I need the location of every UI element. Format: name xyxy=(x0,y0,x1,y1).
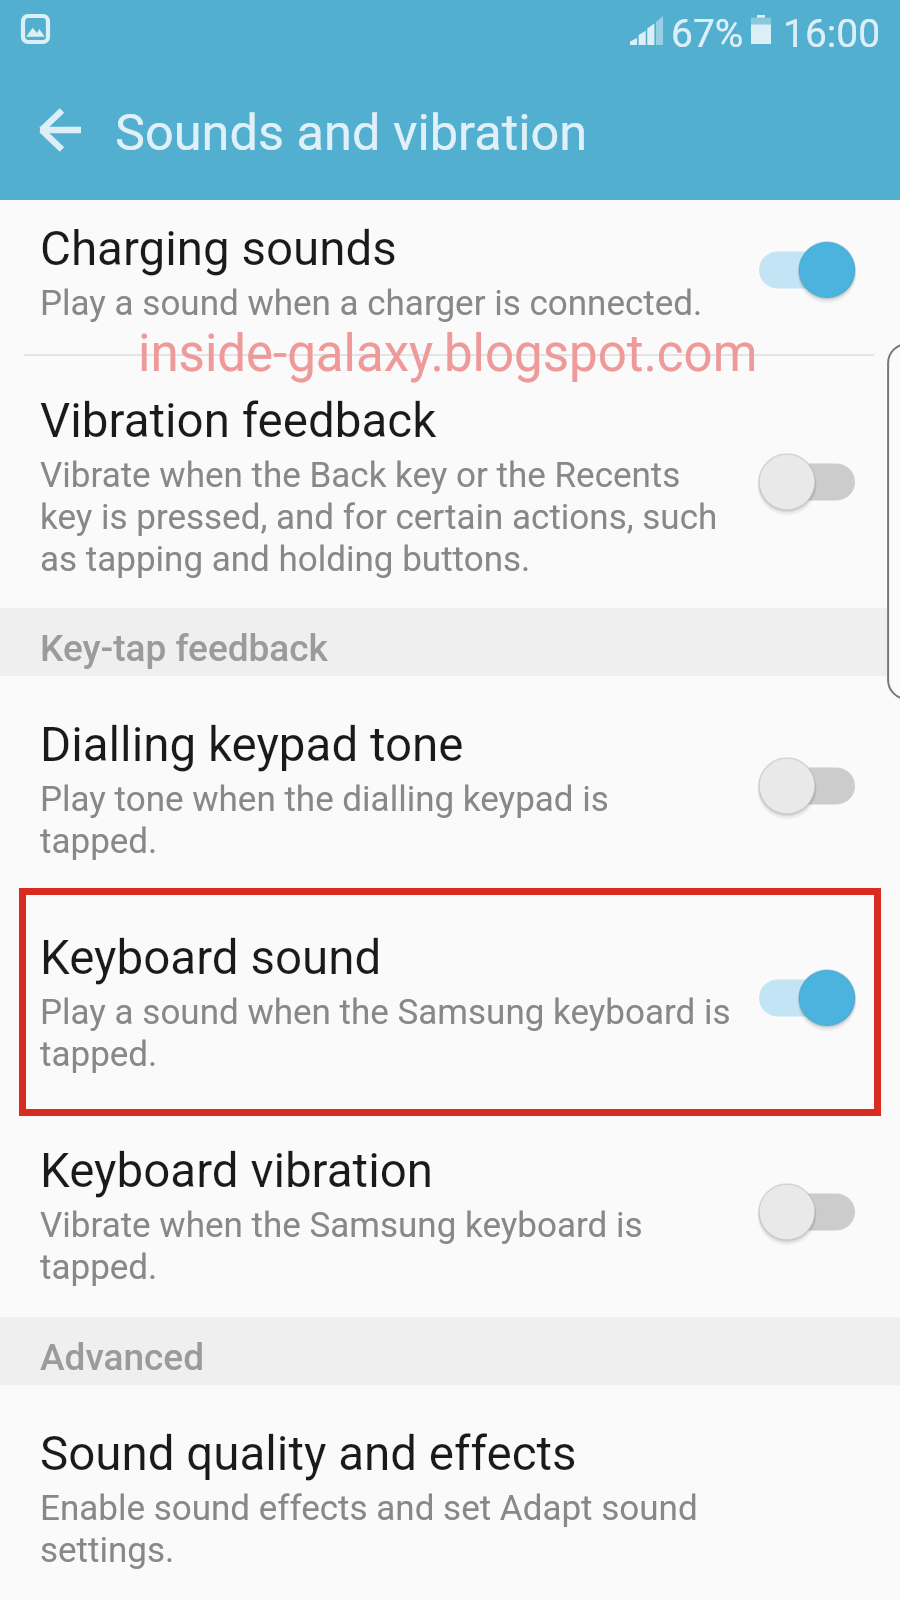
button[interactable] xyxy=(0,676,900,889)
staticText: Sound quality and effects xyxy=(40,1426,577,1482)
button[interactable] xyxy=(0,889,900,1115)
button[interactable] xyxy=(0,1115,900,1317)
staticText: Sounds and vibration xyxy=(115,103,588,162)
button[interactable]: Switch on xyxy=(755,238,859,302)
staticText: Key-tap feedback xyxy=(40,627,328,670)
staticText: 67% xyxy=(671,11,744,57)
button[interactable]: Switch off xyxy=(755,754,859,818)
staticText: Keyboard sound xyxy=(40,930,382,986)
staticText: Keyboard vibration xyxy=(40,1143,434,1199)
button[interactable]: Screenshot captured xyxy=(21,14,50,44)
staticText: settings. xyxy=(40,1530,175,1571)
staticText: Charging sounds xyxy=(40,221,397,277)
staticText: tapped. xyxy=(40,821,158,862)
button[interactable] xyxy=(0,200,900,355)
button[interactable]: Back xyxy=(24,104,96,156)
staticText: Vibrate when the Back key or the Recents xyxy=(40,455,681,496)
button[interactable]: Switch off xyxy=(755,450,859,514)
staticText: inside-galaxy.blogspot.com xyxy=(138,324,758,384)
staticText: Vibrate when the Samsung keyboard is xyxy=(40,1205,643,1246)
button[interactable] xyxy=(0,1385,900,1600)
staticText: Play a sound when the Samsung keyboard i… xyxy=(40,992,731,1033)
button[interactable] xyxy=(0,356,900,608)
staticText: Enable sound effects and set Adapt sound xyxy=(40,1488,698,1529)
staticText: Advanced xyxy=(40,1336,204,1379)
staticText: as tapping and holding buttons. xyxy=(40,539,531,580)
staticText: key is pressed, and for certain actions,… xyxy=(40,497,718,538)
staticText: 16:00 xyxy=(783,11,881,57)
staticText: tapped. xyxy=(40,1034,158,1075)
button[interactable]: Switch off xyxy=(755,1180,859,1244)
button[interactable]: Switch on xyxy=(755,966,859,1030)
staticText: Dialling keypad tone xyxy=(40,717,464,773)
staticText: Vibration feedback xyxy=(40,393,437,449)
staticText: tapped. xyxy=(40,1247,158,1288)
staticText: Play a sound when a charger is connected… xyxy=(40,283,703,324)
staticText: Play tone when the dialling keypad is xyxy=(40,779,609,820)
